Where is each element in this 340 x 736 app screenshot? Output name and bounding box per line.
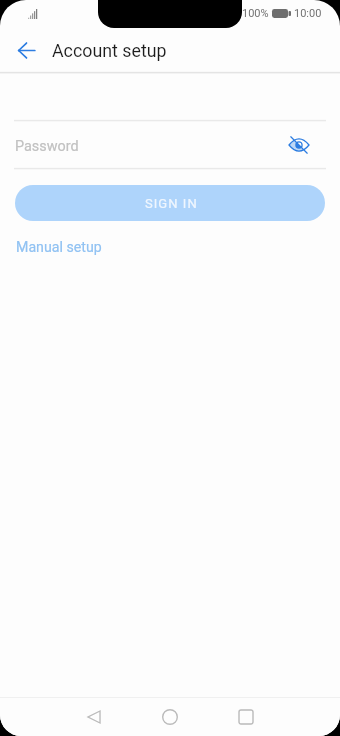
staticText: Password: [15, 138, 79, 155]
button[interactable]: Home: [146, 698, 194, 736]
staticText: Account setup: [52, 40, 167, 61]
button[interactable]: Back: [70, 698, 118, 736]
button[interactable]: Recents: [222, 698, 270, 736]
button[interactable]: Back: [9, 33, 43, 67]
button[interactable]: Manual setup: [16, 239, 102, 256]
staticText: Manual setup: [16, 239, 102, 256]
button[interactable]: Show password: [285, 131, 313, 159]
staticText: 10:00: [294, 7, 322, 20]
staticText: 100%: [242, 7, 269, 20]
staticText: SIGN IN: [145, 196, 198, 211]
button[interactable]: SIGN IN: [15, 185, 325, 221]
